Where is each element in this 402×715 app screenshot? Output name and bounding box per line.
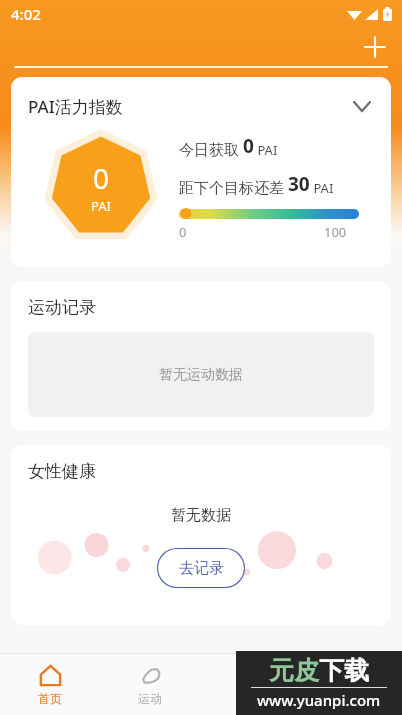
button[interactable] xyxy=(301,654,402,715)
staticText: 0 xyxy=(179,223,187,241)
button[interactable]: PAI活力指数 xyxy=(11,77,391,267)
staticText: PAI活力指数 xyxy=(28,95,123,118)
staticText: PAI xyxy=(254,141,278,159)
button[interactable]: 去记录 xyxy=(157,548,245,588)
button[interactable]: 运动 xyxy=(100,654,200,715)
button[interactable] xyxy=(200,654,301,715)
staticText: 运动记录 xyxy=(28,297,96,318)
staticText: 0 xyxy=(93,159,110,197)
staticText: 0 xyxy=(243,133,254,159)
button[interactable]: Add xyxy=(360,32,390,62)
staticText: 去记录 xyxy=(179,559,224,578)
button[interactable]: Collapse xyxy=(349,93,375,119)
staticText: 暂无运动数据 xyxy=(159,366,243,384)
staticText: 运动 xyxy=(138,691,162,706)
staticText: 距下个目标还差 xyxy=(179,177,288,197)
staticText: 下载 xyxy=(319,655,369,686)
button[interactable]: 首页 xyxy=(0,654,100,715)
staticText: PAI xyxy=(91,197,111,215)
staticText: 首页 xyxy=(38,691,62,706)
staticText: 今日获取 xyxy=(179,139,243,159)
button[interactable]: 女性健康 xyxy=(11,445,391,625)
staticText: www.yuanpi.com xyxy=(257,690,381,710)
staticText: 女性健康 xyxy=(28,461,96,482)
staticText: 元皮 xyxy=(269,655,319,686)
staticText: 30 xyxy=(288,171,310,197)
staticText: 暂无数据 xyxy=(171,506,231,525)
button[interactable]: 运动记录 xyxy=(11,281,391,431)
staticText: 4:02 xyxy=(11,4,41,24)
staticText: PAI xyxy=(310,179,334,197)
staticText: 100 xyxy=(324,223,347,241)
